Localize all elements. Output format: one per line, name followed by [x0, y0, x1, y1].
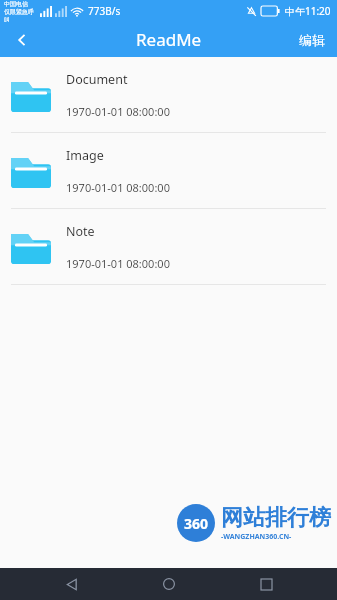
button[interactable]: Back [45, 568, 97, 600]
staticText: 1970-01-01 08:00:00 [66, 180, 170, 195]
staticText: 360 [184, 514, 209, 533]
staticText: 中午11:20 [285, 4, 331, 18]
staticText: -WANGZHAN360.CN- [221, 532, 292, 542]
button[interactable]: Note [0, 209, 337, 284]
button[interactable]: Back [0, 22, 44, 57]
staticText: 1970-01-01 08:00:00 [66, 256, 170, 271]
staticText: 1970-01-01 08:00:00 [66, 104, 170, 119]
staticText: 773B/s [88, 4, 121, 18]
staticText: 编辑 [299, 32, 325, 48]
button[interactable]: Recents [240, 568, 292, 600]
staticText: 仅限紧急呼叫 [4, 8, 38, 22]
staticText: Note [66, 223, 95, 240]
button[interactable]: 编辑 [287, 22, 337, 57]
staticText: 中国电信 [4, 0, 28, 8]
staticText: 网站排行榜 [221, 504, 331, 532]
staticText: Document [66, 71, 128, 88]
button[interactable]: Home [143, 568, 195, 600]
button[interactable]: Image [0, 133, 337, 208]
staticText: ReadMe [136, 28, 202, 51]
staticText: Image [66, 147, 104, 164]
button[interactable]: Document [0, 57, 337, 132]
